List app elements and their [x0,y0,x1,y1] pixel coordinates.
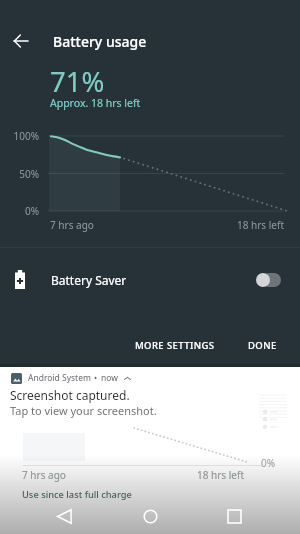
staticText: Battery Saver [51,272,127,288]
staticText: Tap to view your screenshot. [10,403,157,418]
staticText: 71% [50,63,105,100]
staticText: 50% [0,167,39,181]
staticText: Battery usage [53,32,147,51]
button[interactable]: Battery Saver toggle [244,263,288,297]
button[interactable]: Recents [212,494,256,534]
button[interactable]: MORE SETTINGS [127,334,223,357]
button[interactable]: Battery Saver [0,248,300,311]
button[interactable]: Back [6,26,36,56]
button[interactable]: DONE [240,334,285,357]
staticText: Approx. 18 hrs left [50,96,141,110]
staticText: now [101,372,118,384]
staticText: 100% [0,129,39,143]
staticText: • [94,372,98,384]
staticText: DONE [248,339,277,352]
staticText: Android System [28,372,91,384]
button[interactable]: Back [42,494,86,534]
staticText: MORE SETTINGS [135,339,215,352]
staticText: 7 hrs ago [22,468,66,482]
staticText: 18 hrs left [0,218,284,232]
staticText: Screenshot captured. [10,387,130,403]
staticText: Use since last full charge [22,488,132,501]
button[interactable]: Android System [0,367,300,424]
staticText: 18 hrs left [197,468,245,482]
button[interactable]: Collapse [122,373,133,384]
staticText: 0% [261,456,276,470]
button[interactable]: Home [128,494,172,534]
staticText: 0% [0,204,39,218]
staticText: 7 hrs ago [50,218,94,232]
